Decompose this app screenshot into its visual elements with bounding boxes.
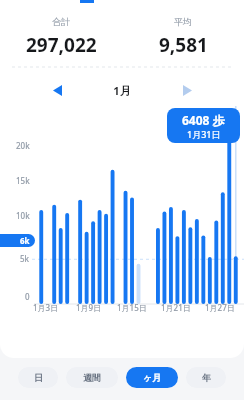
button[interactable]: ヶ月 [126,367,178,388]
button[interactable]: 年 [186,367,226,388]
staticText: 1月27日 [205,302,235,313]
staticText: 1月9日 [76,302,102,313]
staticText: 20k [16,140,30,151]
staticText: 1月3日 [33,302,59,313]
staticText: ヶ月 [143,372,162,383]
staticText: 平均 [174,16,192,27]
staticText: 15k [16,175,30,186]
staticText: 0 [25,291,30,302]
staticText: 1月31日 [187,128,221,140]
staticText: 1月21日 [161,302,191,313]
staticText: 年 [202,372,211,383]
button[interactable]: 週間 [66,367,118,388]
staticText: 5k [20,253,30,264]
staticText: 297,022 [26,32,97,58]
staticText: 10k [16,210,30,221]
staticText: 週間 [83,372,101,383]
staticText: 6408 歩 [182,112,225,128]
button[interactable]: 前の月 [44,77,70,103]
staticText: 1月15日 [117,302,147,313]
staticText: 合計 [52,16,70,27]
staticText: 1月 [113,83,131,98]
button[interactable]: 次の月 [174,77,200,103]
staticText: 日 [34,372,43,383]
staticText: 9,581 [159,32,208,58]
button[interactable]: 日 [18,367,58,388]
button[interactable]: 6408 歩 [167,108,240,143]
staticText: 6k [20,235,30,246]
